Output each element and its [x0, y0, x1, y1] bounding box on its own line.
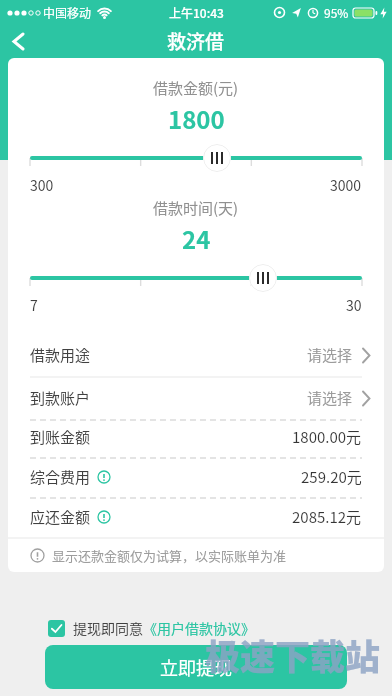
button[interactable] [12, 32, 25, 51]
button[interactable] [203, 144, 231, 172]
staticText: 259.20元 [301, 466, 362, 488]
staticText: 请选择 [307, 387, 353, 409]
staticText: 借款金额(元) [153, 77, 239, 99]
staticText: 24 [182, 221, 211, 255]
button[interactable]: 提现即同意 [48, 617, 255, 639]
button[interactable]: 立即提现 [45, 645, 347, 689]
staticText: 上午10:43 [169, 4, 224, 21]
staticText: 立即提现 [160, 654, 232, 680]
staticText: 借款用途 [30, 344, 91, 366]
staticText: 应还金额 [30, 506, 91, 528]
staticText: 3000 [330, 175, 362, 195]
button[interactable] [249, 264, 277, 292]
staticText: 显示还款金额仅为试算，以实际账单为准 [52, 546, 287, 565]
staticText: 到款账户 [30, 387, 91, 409]
staticText: 《用户借款协议》 [143, 618, 255, 638]
staticText: 7 [30, 295, 38, 315]
staticText: 95% [324, 4, 349, 21]
staticText: 请选择 [307, 344, 353, 366]
staticText: 借款时间(天) [153, 197, 239, 219]
staticText: 综合费用 [30, 466, 91, 488]
button[interactable]: 借款用途 [30, 338, 372, 372]
staticText: 30 [346, 295, 362, 315]
staticText: 300 [30, 175, 54, 195]
staticText: 1800.00元 [292, 426, 362, 448]
staticText: 到账金额 [30, 426, 91, 448]
staticText: 提现即同意 [73, 618, 143, 638]
staticText: 2085.12元 [292, 506, 362, 528]
staticText: 极速下载站 [205, 629, 381, 680]
staticText: 中国移动 [43, 4, 92, 21]
staticText: 1800 [168, 101, 225, 135]
staticText: 救济借 [167, 27, 225, 55]
button[interactable]: 到款账户 [30, 381, 372, 415]
